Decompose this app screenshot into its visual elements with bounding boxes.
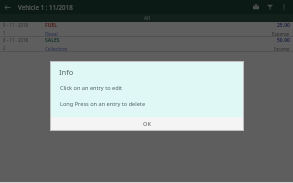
staticText: Income bbox=[274, 46, 290, 51]
button[interactable]: Back bbox=[0, 0, 14, 14]
staticText: Collections bbox=[45, 46, 68, 51]
staticText: Info bbox=[59, 67, 74, 77]
staticText: 1 bbox=[3, 30, 6, 36]
staticText: Expense bbox=[272, 31, 290, 36]
staticText: 8 - 11 - 2018 bbox=[3, 37, 28, 43]
staticText: Diesel bbox=[45, 31, 58, 36]
button[interactable]: Export bbox=[249, 0, 263, 14]
staticText: Vehicle 1 : 11/2018 bbox=[18, 3, 73, 11]
staticText: Click on an entry to edit bbox=[60, 84, 123, 92]
button[interactable]: 9 - 11 - 2018 bbox=[0, 22, 293, 36]
staticText: 50.00 bbox=[277, 37, 290, 44]
staticText: 25.00 bbox=[277, 22, 290, 29]
staticText: Long Press on an entry to delete bbox=[60, 100, 146, 108]
button[interactable]: More options bbox=[277, 0, 291, 14]
staticText: OK bbox=[143, 120, 151, 128]
staticText: All bbox=[144, 15, 150, 22]
staticText: 2 bbox=[3, 45, 6, 51]
staticText: 9 - 11 - 2018 bbox=[3, 22, 28, 28]
staticText: SALES bbox=[45, 37, 60, 44]
button[interactable]: 8 - 11 - 2018 bbox=[0, 37, 293, 51]
button[interactable]: Filter bbox=[263, 0, 277, 14]
staticText: FUEL bbox=[45, 22, 58, 29]
button[interactable]: OK bbox=[51, 117, 243, 130]
